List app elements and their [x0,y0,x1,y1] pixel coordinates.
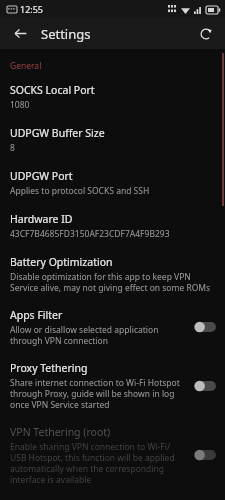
button[interactable]: Battery Optimization [0,246,225,299]
staticText: 12:55 [20,3,44,15]
staticText: UDPGW Buffer Size [10,126,105,140]
staticText: 1080 [10,99,30,111]
staticText: Hardware ID [10,212,73,226]
staticText: SOCKS Local Port [10,83,95,97]
button[interactable]: Toggle [192,319,218,335]
staticText: Applies to protocol SOCKS and SSH [10,185,150,197]
button[interactable]: Proxy Tethering [0,352,225,416]
staticText: Enable sharing VPN connection to Wi-Fi/U… [10,441,186,485]
staticText: 43CF7B4685FD3150AF23CDF7A4F9B293 [10,228,170,240]
button[interactable]: UDPGW Buffer Size [0,117,225,160]
button[interactable]: VPN Tethering (root) [0,416,225,491]
button[interactable]: SOCKS Local Port [0,74,225,117]
staticText: Battery Optimization [10,255,113,269]
button[interactable]: Refresh [194,22,218,46]
staticText: Proxy Tethering [10,361,88,375]
staticText: 8 [10,142,15,154]
staticText: Apps Filter [10,308,63,322]
button[interactable]: Toggle [192,447,218,463]
button[interactable]: Toggle [192,378,218,394]
staticText: Allow or disallow selected application t… [10,324,186,346]
button[interactable]: Hardware ID [0,203,225,246]
staticText: UDPGW Port [10,169,73,183]
button[interactable]: UDPGW Port [0,160,225,203]
staticText: VPN Tethering (root) [10,425,111,439]
button[interactable]: Apps Filter [0,299,225,352]
staticText: Settings [41,25,91,43]
staticText: Disable optimization for this app to kee… [10,271,213,293]
button[interactable]: Back [9,22,32,45]
staticText: General [10,60,42,72]
staticText: Share internet connection to Wi-Fi Hotsp… [10,377,186,410]
